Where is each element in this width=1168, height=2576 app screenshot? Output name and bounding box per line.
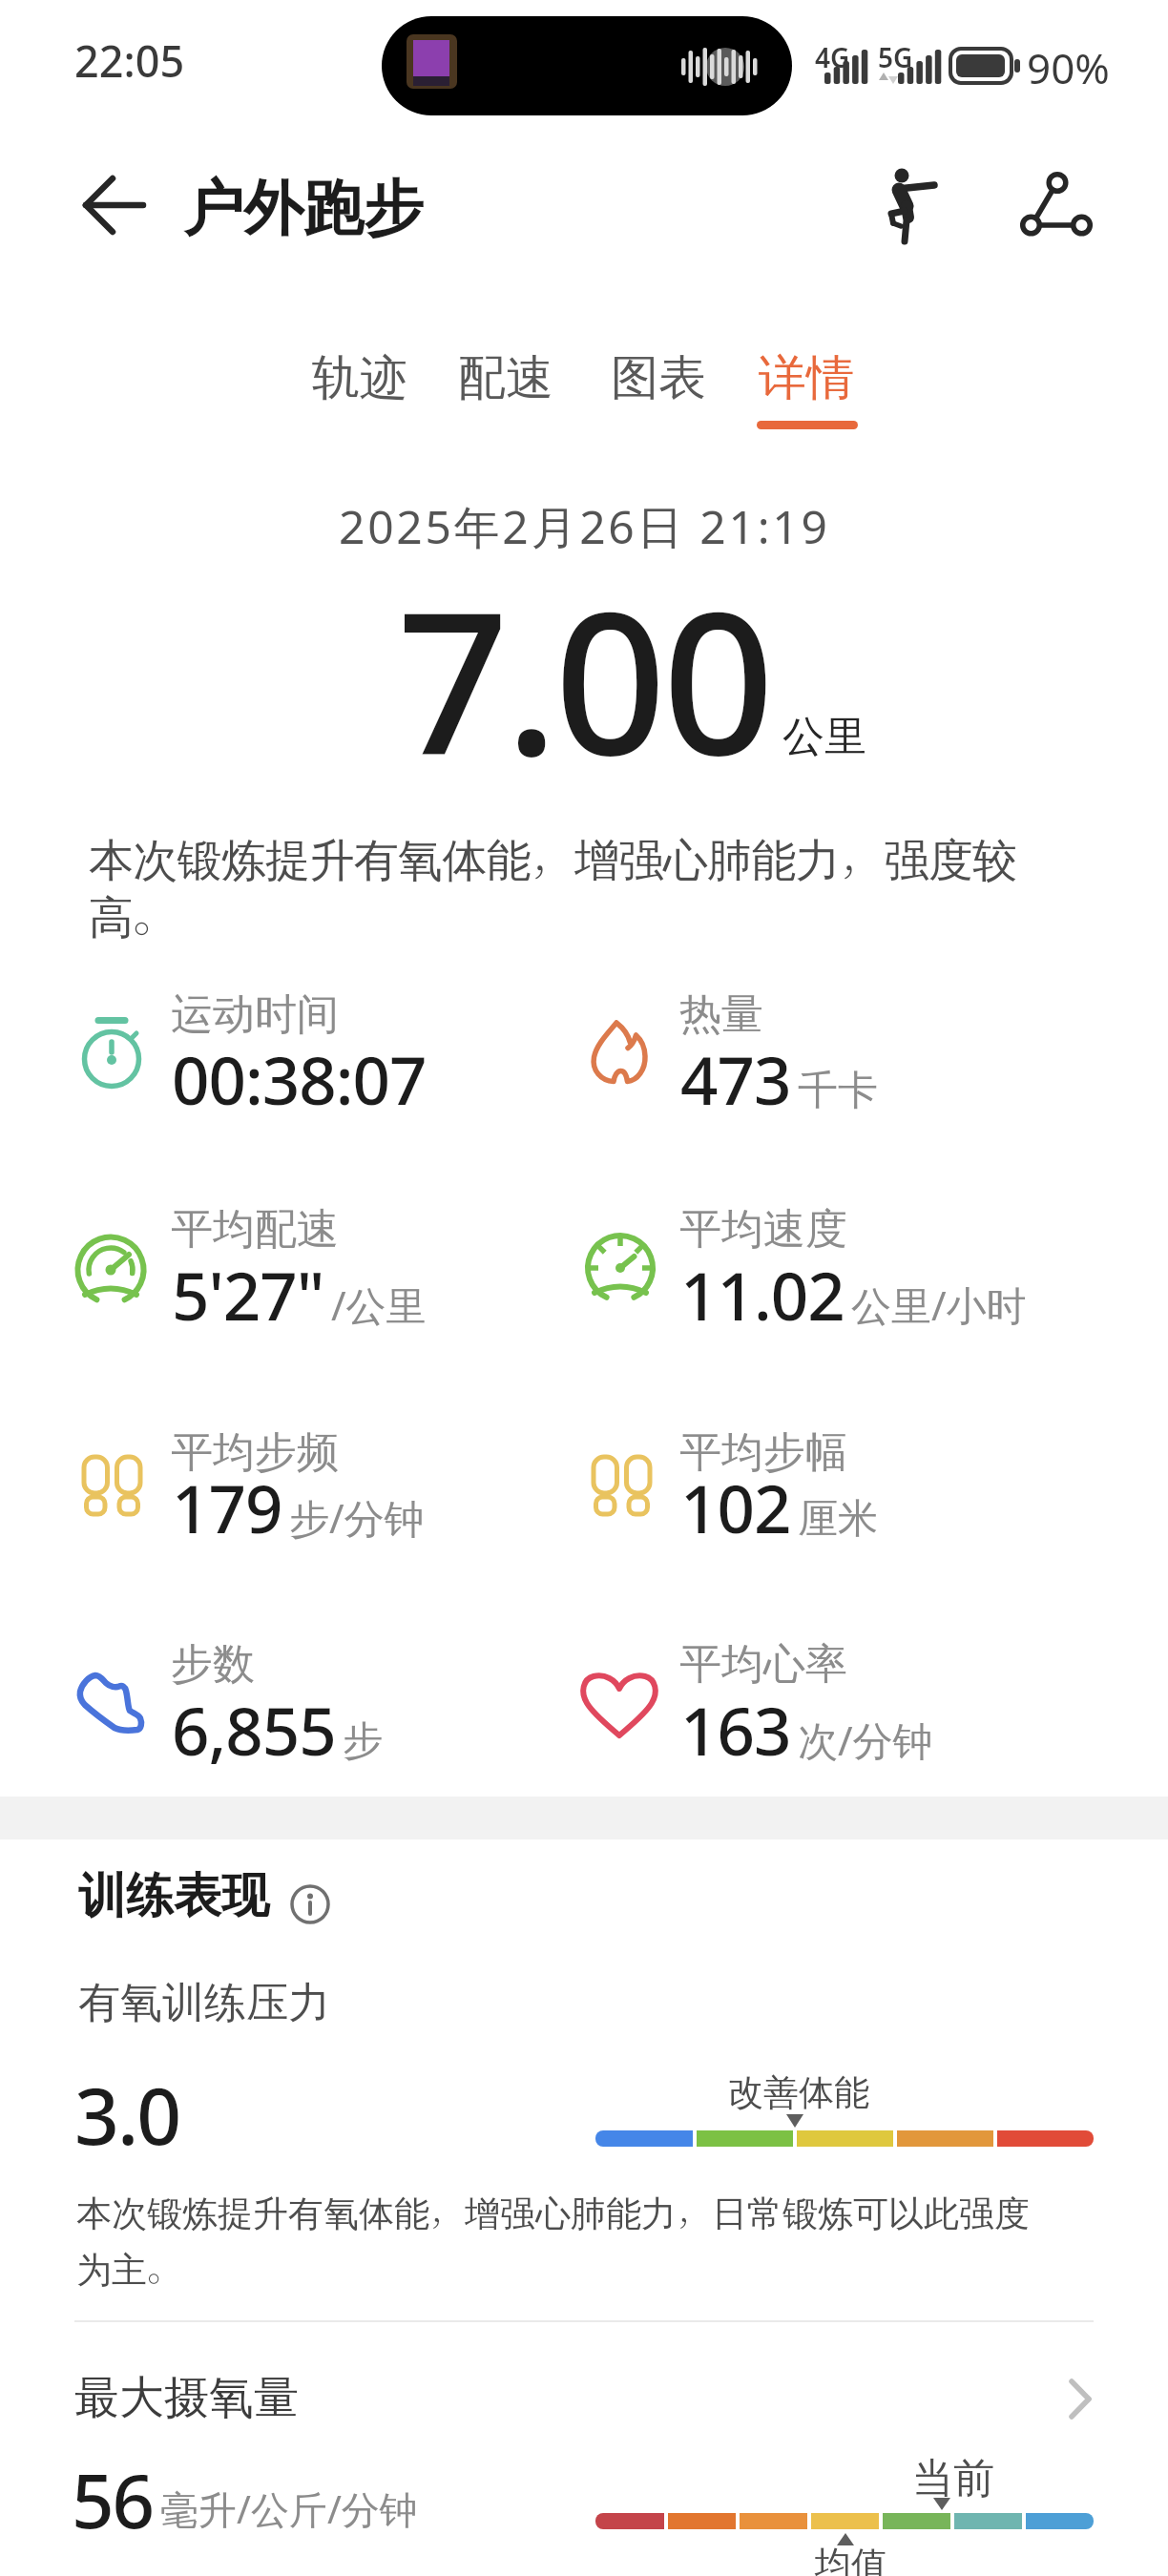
staticText: 11.02 — [680, 1250, 845, 1340]
button[interactable] — [286, 1880, 334, 1928]
staticText: 3.0 — [74, 2061, 180, 2168]
staticText: 90% — [1027, 39, 1110, 96]
staticText: 4G — [815, 39, 850, 75]
staticText: 179 — [172, 1463, 282, 1552]
staticText: 56 — [72, 2449, 154, 2550]
staticText: 163 — [680, 1685, 791, 1775]
staticText: 7.00 — [397, 546, 771, 812]
staticText: 6,855 — [172, 1685, 336, 1775]
staticText: 步数 — [171, 1638, 255, 1691]
staticText: 次/分钟 — [798, 1713, 933, 1767]
staticText: 473 — [680, 1034, 791, 1124]
staticText: 步/分钟 — [289, 1490, 425, 1545]
button[interactable] — [57, 167, 153, 243]
staticText: 详情 — [759, 348, 854, 408]
staticText: 平均心率 — [679, 1638, 847, 1691]
button[interactable] — [597, 334, 721, 420]
staticText: 热量 — [679, 988, 763, 1041]
staticText: 本次锻炼提升有氧体能，增强心肺能力，强度较 高。 — [89, 823, 1017, 946]
staticText: 户外跑步 — [183, 171, 424, 246]
staticText: 厘米 — [798, 1494, 878, 1545]
staticText: 轨迹 — [312, 348, 407, 408]
staticText: 运动时间 — [171, 988, 339, 1041]
staticText: 22:05 — [74, 31, 185, 90]
staticText: 训练表现 — [78, 1866, 269, 1926]
button[interactable] — [445, 334, 569, 420]
staticText: 平均速度 — [679, 1203, 847, 1256]
staticText: 公里/小时 — [851, 1278, 1027, 1332]
staticText: 千卡 — [798, 1066, 878, 1116]
staticText: 平均步幅 — [679, 1426, 847, 1479]
staticText: 102 — [680, 1463, 791, 1552]
staticText: 2025年2月26日 21:19 — [339, 495, 830, 558]
staticText: 平均配速 — [171, 1203, 339, 1256]
staticText: 均值 — [815, 2542, 887, 2576]
staticText: 最大摄氧量 — [74, 2370, 299, 2426]
staticText: 配速 — [458, 348, 553, 408]
staticText: 图表 — [611, 348, 706, 408]
staticText: 公里 — [782, 711, 866, 763]
button[interactable] — [57, 2357, 1111, 2452]
staticText: 本次锻炼提升有氧体能，增强心肺能力，日常锻炼可以此强度 为主。 — [76, 2185, 1030, 2293]
staticText: 毫升/公斤/分钟 — [160, 2483, 418, 2535]
staticText: 5'27" — [172, 1250, 324, 1340]
staticText: 00:38:07 — [172, 1034, 427, 1124]
button[interactable] — [1002, 157, 1097, 253]
staticText: 有氧训练压力 — [78, 1977, 330, 2029]
button[interactable] — [864, 157, 949, 253]
staticText: 当前 — [912, 2453, 994, 2504]
staticText: 步 — [343, 1716, 383, 1767]
staticText: 5G — [878, 39, 913, 75]
staticText: /公里 — [331, 1278, 427, 1332]
staticText: 平均步频 — [171, 1426, 339, 1479]
staticText: 改善体能 — [728, 2070, 869, 2115]
button[interactable] — [745, 334, 869, 420]
button[interactable] — [299, 334, 423, 420]
